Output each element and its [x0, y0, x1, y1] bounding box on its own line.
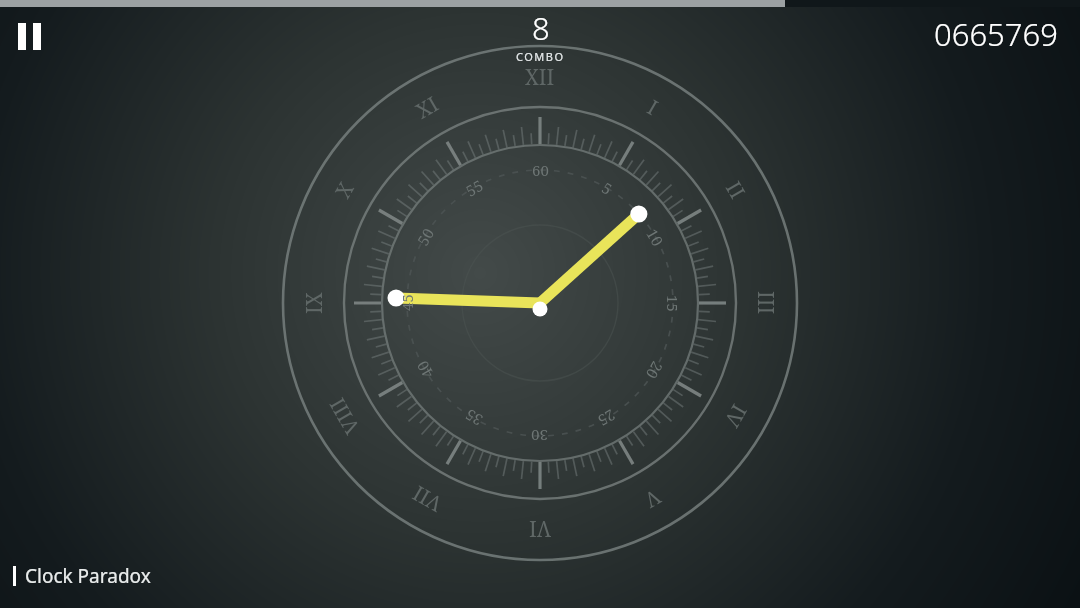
staticText: VII: [407, 478, 447, 519]
staticText: 60: [532, 160, 549, 180]
staticText: 40: [412, 357, 438, 382]
staticText: 25: [594, 405, 619, 431]
staticText: X: [328, 177, 360, 203]
staticText: 10: [642, 225, 668, 250]
staticText: 8: [532, 7, 550, 49]
staticText: VIII: [322, 392, 366, 439]
button[interactable]: Pause: [12, 17, 50, 55]
staticText: 5: [598, 177, 616, 199]
staticText: IX: [300, 292, 329, 314]
staticText: 45: [397, 294, 417, 311]
staticText: 50: [412, 224, 438, 249]
staticText: I: [642, 93, 663, 122]
staticText: Clock Paradox: [25, 563, 151, 589]
staticText: 20: [642, 358, 668, 383]
staticText: 55: [462, 175, 487, 201]
staticText: VI: [529, 514, 551, 543]
staticText: II: [719, 176, 752, 204]
staticText: XII: [525, 63, 555, 92]
staticText: 0665769: [934, 13, 1058, 55]
staticText: V: [639, 482, 666, 515]
staticText: XI: [410, 89, 444, 125]
staticText: IV: [717, 399, 754, 433]
staticText: III: [751, 291, 780, 315]
staticText: 15: [663, 295, 683, 312]
staticText: COMBO: [516, 49, 565, 64]
staticText: 35: [461, 405, 486, 431]
staticText: 30: [531, 426, 548, 446]
